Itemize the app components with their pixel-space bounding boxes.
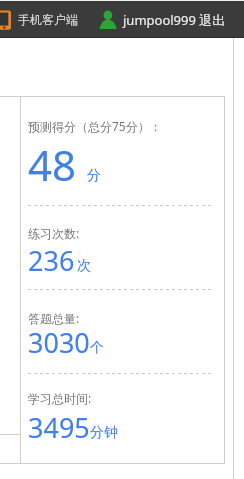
staticText: 分钟: [90, 424, 118, 442]
staticText: 3030: [28, 324, 90, 361]
staticText: 练习次数:: [28, 225, 80, 241]
staticText: 预测得分（总分75分）：: [28, 118, 162, 134]
staticText: jumpool999 退出: [123, 11, 226, 29]
staticText: 个: [90, 339, 104, 357]
staticText: 手机客户端: [18, 12, 78, 27]
staticText: 学习总时间:: [28, 390, 92, 406]
staticText: 3495: [28, 409, 90, 446]
staticText: 答题总量:: [28, 310, 80, 326]
staticText: 236: [28, 242, 75, 279]
staticText: 分: [87, 167, 101, 185]
staticText: 次: [77, 257, 91, 275]
staticText: 48: [28, 136, 77, 193]
